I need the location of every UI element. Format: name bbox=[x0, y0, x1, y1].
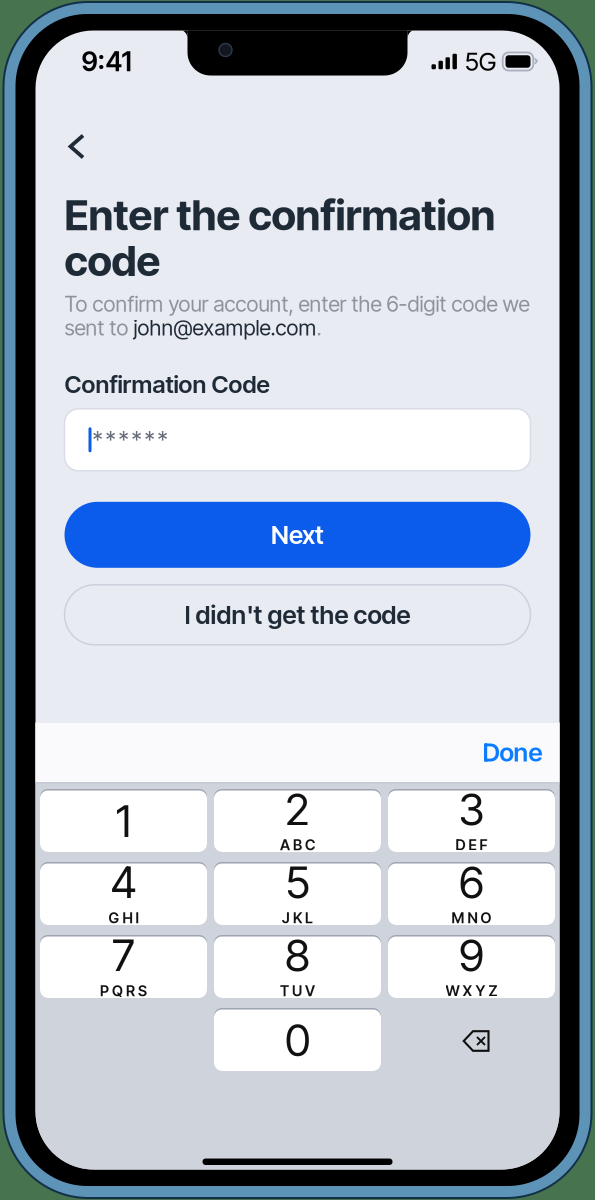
button[interactable]: Delete bbox=[388, 1009, 555, 1072]
staticText: 7 bbox=[112, 929, 135, 982]
button[interactable]: 0 bbox=[214, 1009, 381, 1072]
staticText: code bbox=[64, 235, 160, 286]
button[interactable]: 1 bbox=[40, 790, 207, 853]
button[interactable]: 3 bbox=[388, 790, 555, 853]
staticText: J K L bbox=[282, 909, 313, 927]
staticText: T U V bbox=[280, 982, 315, 1000]
staticText: 2 bbox=[285, 783, 310, 836]
button[interactable]: 8 bbox=[214, 936, 381, 999]
button[interactable]: Back bbox=[64, 128, 103, 164]
staticText: * * * * * * bbox=[92, 426, 167, 453]
staticText: G H I bbox=[108, 909, 138, 927]
staticText: 9:41 bbox=[81, 45, 131, 78]
staticText: D E F bbox=[455, 836, 487, 854]
button[interactable]: 6 bbox=[388, 863, 555, 926]
staticText: Enter the confirmation bbox=[64, 189, 495, 240]
button[interactable]: I didn't get the code bbox=[64, 585, 530, 645]
staticText: 9 bbox=[459, 929, 484, 982]
staticText: I didn't get the code bbox=[184, 599, 410, 630]
staticText: 6 bbox=[459, 856, 484, 909]
staticText: W X Y Z bbox=[445, 982, 497, 1000]
button[interactable]: 5 bbox=[214, 863, 381, 926]
button[interactable]: 2 bbox=[214, 790, 381, 853]
staticText: john@example.com bbox=[133, 315, 316, 341]
staticText: A B C bbox=[280, 836, 315, 854]
button[interactable]: 4 bbox=[40, 863, 207, 926]
staticText: . bbox=[316, 315, 321, 341]
button[interactable]: 7 bbox=[40, 936, 207, 999]
staticText: 5 bbox=[285, 856, 309, 909]
staticText: 8 bbox=[285, 929, 310, 982]
staticText: Next bbox=[271, 519, 324, 550]
staticText: 1 bbox=[115, 795, 131, 848]
button[interactable]: Next bbox=[64, 502, 530, 568]
staticText: Done bbox=[482, 737, 542, 768]
staticText: P Q R S bbox=[100, 982, 147, 1000]
button[interactable]: 9 bbox=[388, 936, 555, 999]
button[interactable]: Done bbox=[472, 729, 552, 776]
staticText: To confirm your account, enter the 6-dig… bbox=[64, 291, 529, 317]
staticText: sent to bbox=[64, 315, 133, 341]
staticText: 3 bbox=[458, 783, 484, 836]
staticText: 0 bbox=[285, 1014, 310, 1067]
staticText: M N O bbox=[451, 909, 491, 927]
staticText: Confirmation Code bbox=[64, 370, 269, 399]
staticText: 5G bbox=[465, 46, 497, 77]
staticText: 4 bbox=[110, 856, 136, 909]
